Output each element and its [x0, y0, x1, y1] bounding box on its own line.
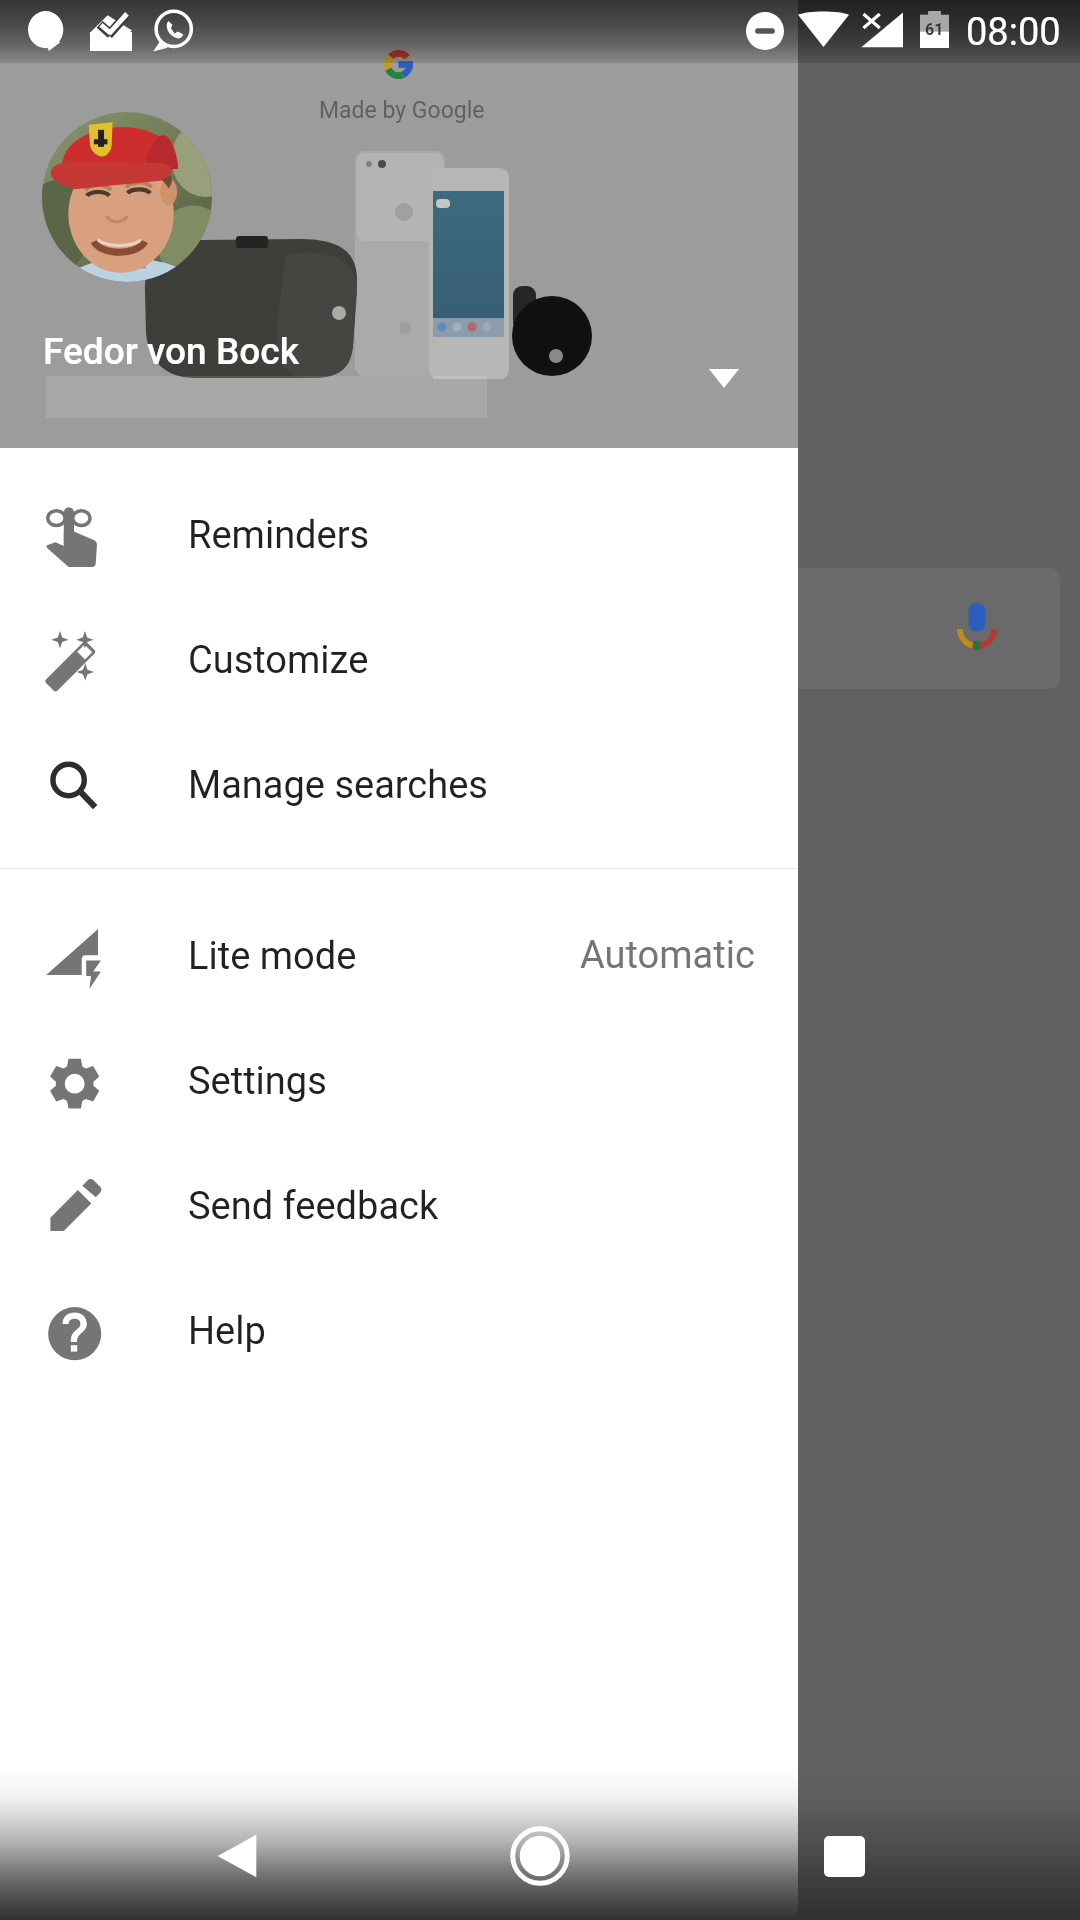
staticText: Automatic	[580, 933, 755, 978]
button[interactable]: Lite mode	[0, 893, 798, 1018]
staticText: Settings	[188, 1059, 327, 1104]
button[interactable]: Send feedback	[0, 1143, 798, 1268]
button[interactable]: Recent apps	[782, 1794, 906, 1918]
staticText: Send feedback	[188, 1184, 439, 1229]
staticText: Manage searches	[188, 763, 488, 808]
other: Voice search	[948, 598, 1008, 656]
staticText: Customize	[188, 638, 369, 683]
button[interactable]: Settings	[0, 1018, 798, 1143]
staticText: Lite mode	[188, 934, 357, 979]
staticText: Help	[188, 1309, 266, 1354]
button[interactable]: Back	[175, 1794, 299, 1918]
staticText: 08:00	[966, 10, 1061, 55]
button[interactable]: Customize	[0, 597, 798, 722]
staticText: Reminders	[188, 513, 370, 558]
button[interactable]: Home	[478, 1794, 602, 1918]
button[interactable]: Reminders	[0, 472, 798, 597]
button[interactable]: Help	[0, 1268, 798, 1393]
button[interactable]: Manage searches	[0, 722, 798, 847]
staticText: Made by Google	[319, 97, 485, 124]
button[interactable]: Account avatar	[42, 112, 212, 282]
staticText: Fedor von Bock	[43, 330, 300, 373]
button[interactable]: Switch account	[676, 330, 772, 426]
button[interactable]: Voice search	[300, 568, 1060, 689]
staticText: 61	[925, 20, 944, 39]
